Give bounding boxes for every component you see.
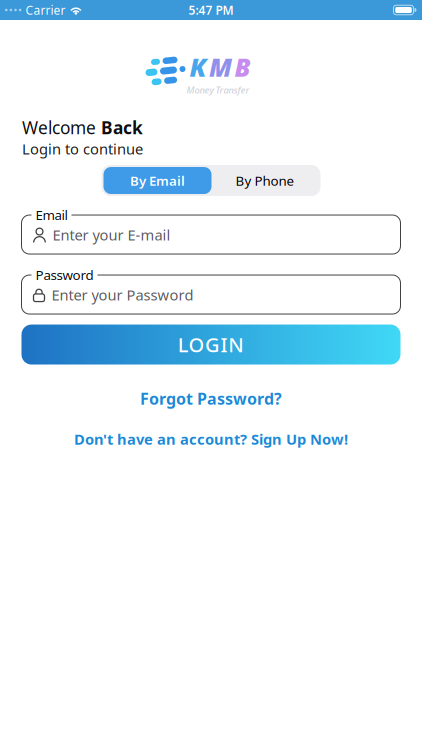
staticText: By Phone	[235, 172, 294, 189]
staticText: By Email	[130, 172, 185, 189]
staticText: Money Transfer	[186, 84, 249, 96]
staticText: 5:47 PM	[188, 2, 233, 18]
staticText: Email	[35, 206, 67, 224]
button[interactable]: Enter your Password	[21, 266, 400, 314]
staticText: K	[189, 50, 206, 84]
staticText: B	[234, 50, 250, 84]
button[interactable]: By Phone	[211, 167, 318, 194]
staticText: Enter your Password	[51, 285, 193, 304]
button[interactable]: LOGIN	[21, 324, 400, 364]
staticText: Password	[35, 266, 93, 284]
staticText: Don't have an account? Sign Up Now!	[74, 429, 348, 449]
staticText: Welcome Back	[22, 116, 143, 139]
button[interactable]: Don't have an account? Sign Up Now!	[74, 429, 348, 449]
button[interactable]: Forgot Password?	[140, 388, 282, 409]
staticText: Enter your E-mail	[52, 225, 170, 244]
button[interactable]: By Email	[103, 167, 211, 194]
staticText: M	[209, 50, 232, 84]
button[interactable]: Enter your E-mail	[21, 206, 400, 254]
staticText: Carrier	[25, 2, 65, 18]
staticText: Forgot Password?	[140, 388, 282, 409]
staticText: LOGIN	[178, 331, 244, 358]
staticText: Login to continue	[22, 139, 143, 159]
